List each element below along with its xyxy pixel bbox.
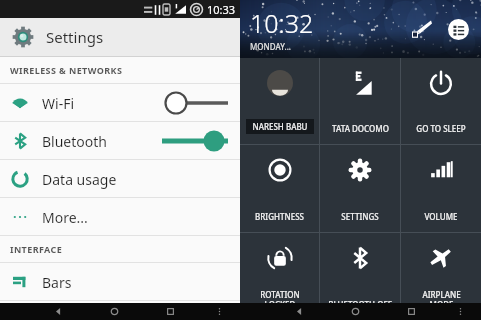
staticText: BRIGHTNESS — [255, 211, 304, 222]
staticText: TATA DOCOMO — [332, 123, 389, 134]
button[interactable]: TATA DOCOMO — [320, 58, 400, 144]
button[interactable]: Home — [347, 303, 364, 320]
button[interactable]: Back — [291, 303, 308, 320]
staticText: SETTINGS — [341, 211, 379, 222]
staticText: VOLUME — [424, 211, 458, 222]
button[interactable]: More... — [0, 198, 240, 236]
button[interactable]: BLUETOOTH OFF — [320, 233, 400, 320]
button[interactable]: VOLUME — [401, 145, 481, 232]
button[interactable]: Recents — [403, 303, 420, 320]
button[interactable]: Back — [50, 303, 67, 320]
button[interactable]: Edit — [409, 16, 435, 42]
button[interactable]: Home — [106, 303, 123, 320]
button[interactable]: ROTATION LOCKED — [240, 233, 319, 320]
button[interactable]: NARESH BABU — [240, 58, 319, 144]
button[interactable]: AIRPLANE MODE — [401, 233, 481, 320]
staticText: Settings — [46, 27, 104, 47]
staticText: Bluetooth — [42, 132, 107, 151]
button[interactable]: Bluetooth — [0, 122, 240, 160]
staticText: Wi-Fi — [42, 94, 75, 113]
button[interactable]: Wi-Fi — [0, 84, 240, 122]
button[interactable]: GO TO SLEEP — [401, 58, 481, 144]
button[interactable]: SETTINGS — [320, 145, 400, 232]
button[interactable]: Menu — [452, 303, 469, 320]
staticText: NARESH BABU — [252, 121, 308, 132]
button[interactable]: Data usage — [0, 160, 240, 198]
staticText: INTERFACE — [10, 243, 63, 255]
staticText: GO TO SLEEP — [416, 123, 466, 134]
button[interactable]: Settings — [0, 18, 240, 56]
staticText: BLUETOOTH OFF — [328, 299, 392, 310]
staticText: More... — [42, 208, 88, 227]
staticText: Bars — [42, 273, 72, 292]
staticText: 10:32 — [250, 6, 314, 40]
staticText: AIRPLANE MODE — [422, 289, 461, 310]
button[interactable]: BRIGHTNESS — [240, 145, 319, 232]
button[interactable]: Menus — [0, 301, 240, 320]
staticText: ROTATION LOCKED — [260, 289, 300, 310]
button[interactable]: Quick settings list — [445, 16, 471, 42]
staticText: MONDAY... — [250, 41, 291, 52]
button[interactable]: Recents — [162, 303, 179, 320]
button[interactable]: Menu — [211, 303, 228, 320]
staticText: Menus — [42, 301, 87, 320]
staticText: WIRELESS & NETWORKS — [10, 64, 123, 76]
staticText: Data usage — [42, 170, 117, 189]
staticText: 10:33 — [207, 2, 236, 17]
button[interactable]: Bars — [0, 263, 240, 301]
